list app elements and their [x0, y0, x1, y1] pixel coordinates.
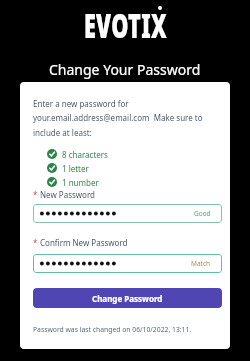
staticText: * [33, 189, 40, 200]
staticText: Change Your Password [49, 60, 201, 79]
staticText: 1 letter [62, 163, 89, 174]
button[interactable]: Good [33, 204, 222, 223]
staticText: 1 number [62, 177, 99, 188]
staticText: EVOTIX [84, 3, 167, 48]
staticText: Change Password [92, 293, 163, 304]
staticText: Enter a new password for your.email.addr… [33, 98, 203, 139]
button[interactable]: Match [33, 254, 222, 273]
staticText: Match [191, 259, 211, 268]
button[interactable]: Change Password [33, 288, 222, 308]
staticText: New Password [40, 189, 95, 200]
staticText: 8 characters [62, 149, 108, 160]
staticText: * [33, 237, 40, 248]
staticText: Good [194, 209, 211, 218]
staticText: Confirm New Password [40, 237, 128, 248]
staticText: Password was last changed on 06/10/2022,… [33, 325, 192, 334]
